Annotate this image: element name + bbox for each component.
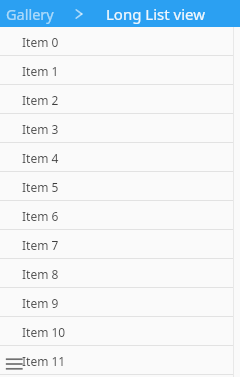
button[interactable]: Item 11 bbox=[0, 346, 240, 375]
staticText: Item 0 bbox=[22, 34, 59, 50]
button[interactable]: Item 3 bbox=[0, 114, 240, 143]
staticText: Item 9 bbox=[22, 295, 59, 311]
staticText: Item 8 bbox=[22, 266, 59, 282]
button[interactable]: Item 4 bbox=[0, 143, 240, 172]
button[interactable]: Open navigation drawer bbox=[2, 352, 26, 376]
other: Forward bbox=[72, 7, 86, 21]
staticText: Item 11 bbox=[22, 353, 66, 369]
staticText: Item 5 bbox=[22, 179, 59, 195]
staticText: Item 10 bbox=[22, 324, 66, 340]
button[interactable]: Item 0 bbox=[0, 27, 240, 56]
staticText: Item 6 bbox=[22, 208, 59, 224]
button[interactable]: Item 1 bbox=[0, 56, 240, 85]
button[interactable]: Item 6 bbox=[0, 201, 240, 230]
button[interactable]: Item 7 bbox=[0, 230, 240, 259]
staticText: Item 2 bbox=[22, 92, 59, 108]
staticText: Item 7 bbox=[22, 237, 59, 253]
button[interactable]: Item 5 bbox=[0, 172, 240, 201]
staticText: Item 1 bbox=[22, 63, 59, 79]
staticText: Gallery bbox=[6, 4, 54, 24]
button[interactable]: Item 10 bbox=[0, 317, 240, 346]
button[interactable]: Item 9 bbox=[0, 288, 240, 317]
staticText: Item 3 bbox=[22, 121, 59, 137]
button[interactable]: Item 8 bbox=[0, 259, 240, 288]
staticText: Long List view bbox=[106, 4, 206, 24]
staticText: Item 4 bbox=[22, 150, 59, 166]
button[interactable]: Item 2 bbox=[0, 85, 240, 114]
button[interactable]: Gallery bbox=[3, 0, 69, 27]
